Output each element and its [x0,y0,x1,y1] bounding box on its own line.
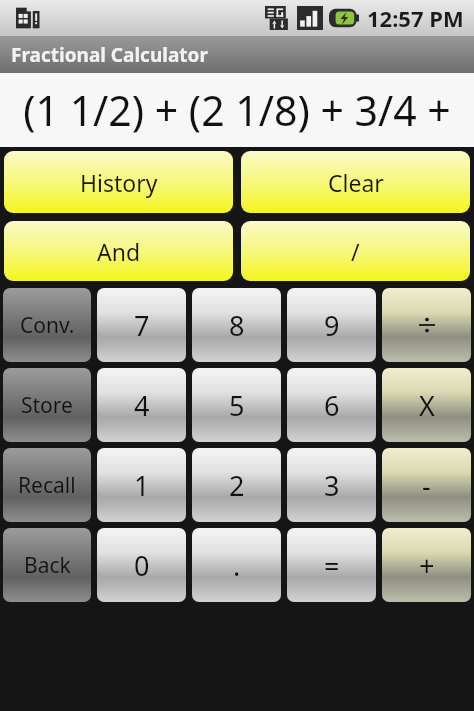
staticText: 1 [134,467,150,504]
staticText: 2 [229,467,245,504]
staticText: / [351,236,360,267]
button[interactable]: / [241,221,470,281]
button[interactable] [382,288,471,362]
button[interactable]: Conv. [3,288,91,362]
button[interactable]: History [4,151,233,213]
button[interactable]: Store [3,368,91,442]
button[interactable]: And [4,221,233,281]
staticText: 7 [134,307,150,344]
button[interactable]: Clear [241,151,470,213]
button[interactable]: 9 [287,288,376,362]
staticText: 4 [134,387,150,424]
staticText: - [422,467,431,504]
staticText: 6 [324,387,340,424]
button[interactable]: 7 [97,288,186,362]
staticText: And [97,236,141,267]
button[interactable]: Back [3,528,91,602]
staticText: 3 [324,467,340,504]
staticText: Recall [18,471,76,500]
button[interactable]: 3 [287,448,376,522]
staticText: Fractional Calculator [11,42,208,68]
staticText: Back [24,551,71,580]
button[interactable]: - [382,448,471,522]
staticText: + [419,547,435,584]
staticText: 12:57 PM [367,3,464,33]
staticText: X [419,387,435,424]
button[interactable]: 4 [97,368,186,442]
staticText: 5 [229,387,245,424]
staticText: 0 [134,547,150,584]
staticText: Store [21,391,73,420]
button[interactable]: + [382,528,471,602]
button[interactable]: 1 [97,448,186,522]
button[interactable]: X [382,368,471,442]
staticText: 9 [324,307,340,344]
staticText: 8 [229,307,245,344]
staticText: History [80,167,158,198]
staticText: . [233,547,241,584]
button[interactable]: 8 [192,288,281,362]
button[interactable]: Recall [3,448,91,522]
staticText: Clear [328,167,384,198]
button[interactable]: 6 [287,368,376,442]
staticText: Conv. [20,311,75,340]
button[interactable]: 5 [192,368,281,442]
button[interactable]: . [192,528,281,602]
button[interactable]: = [287,528,376,602]
staticText: (1 1/2) + (2 1/8) + 3/4 + 1/16 [0,82,474,138]
button[interactable]: 2 [192,448,281,522]
staticText: = [324,547,340,584]
button[interactable]: 0 [97,528,186,602]
